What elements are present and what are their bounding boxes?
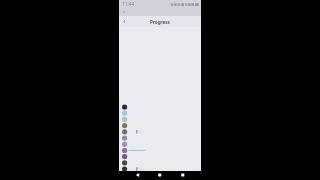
button[interactable] bbox=[119, 110, 201, 116]
button[interactable] bbox=[119, 140, 201, 146]
button[interactable]: Back bbox=[120, 17, 129, 26]
button[interactable]: App icon bbox=[122, 10, 127, 15]
button[interactable] bbox=[119, 134, 201, 140]
button[interactable] bbox=[119, 158, 201, 164]
button[interactable] bbox=[119, 104, 201, 110]
button[interactable]: Home bbox=[147, 171, 174, 180]
button[interactable] bbox=[119, 152, 201, 158]
staticText: Progress bbox=[150, 19, 170, 25]
button[interactable] bbox=[119, 146, 201, 152]
button[interactable] bbox=[119, 128, 201, 134]
staticText: 11:44 bbox=[122, 1, 135, 8]
button[interactable]: Back bbox=[119, 171, 146, 180]
button[interactable]: Recents bbox=[174, 171, 201, 180]
button[interactable] bbox=[119, 164, 201, 170]
button[interactable] bbox=[119, 116, 201, 122]
button[interactable] bbox=[119, 122, 201, 128]
